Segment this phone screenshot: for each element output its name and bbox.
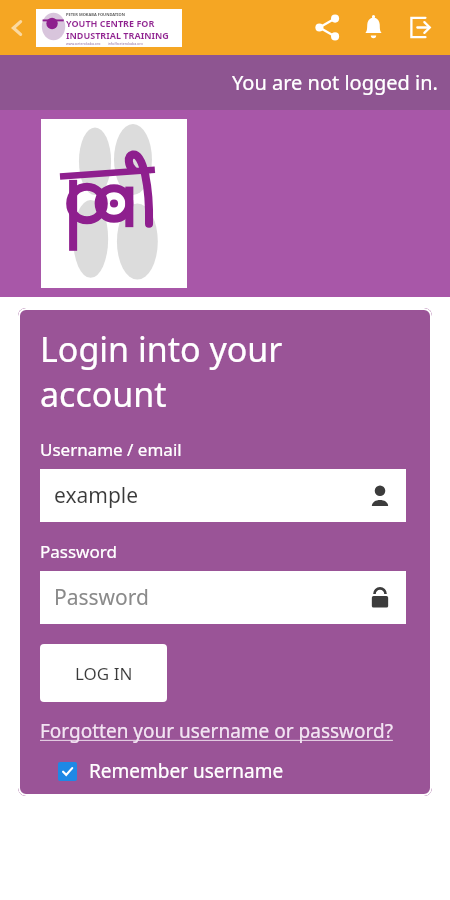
button[interactable]: Share [304, 0, 350, 55]
staticText: PETER MOKABA FOUNDATION [66, 12, 179, 17]
button[interactable]: Notifications [350, 0, 396, 55]
staticText: Forgotten your username or password? [40, 718, 393, 744]
staticText: Remember username [89, 758, 284, 784]
button[interactable]: Remember username [58, 758, 284, 784]
staticText: www.peterokaba.org info@peterokaba.org [66, 41, 143, 45]
staticText: Login into your account [40, 326, 384, 416]
button[interactable]: Log out [396, 0, 442, 55]
button[interactable]: example [40, 469, 406, 522]
staticText: YOUTH CENTRE FOR [66, 17, 155, 29]
button[interactable]: LOG IN [40, 644, 167, 702]
staticText: LOG IN [75, 662, 133, 685]
staticText: Password [40, 540, 117, 563]
button[interactable]: PETER MOKABA FOUNDATION [36, 9, 182, 47]
button[interactable]: PAF logo [41, 119, 187, 288]
staticText: example [54, 481, 368, 510]
staticText: Password [54, 583, 368, 612]
staticText: You are not logged in. [232, 69, 438, 96]
button[interactable]: Forgotten your username or password? [40, 718, 395, 744]
staticText: Username / email [40, 438, 182, 461]
button[interactable]: Back [0, 0, 34, 55]
button[interactable]: Password [40, 571, 406, 624]
staticText: INDUSTRIAL TRAINING [66, 29, 169, 41]
